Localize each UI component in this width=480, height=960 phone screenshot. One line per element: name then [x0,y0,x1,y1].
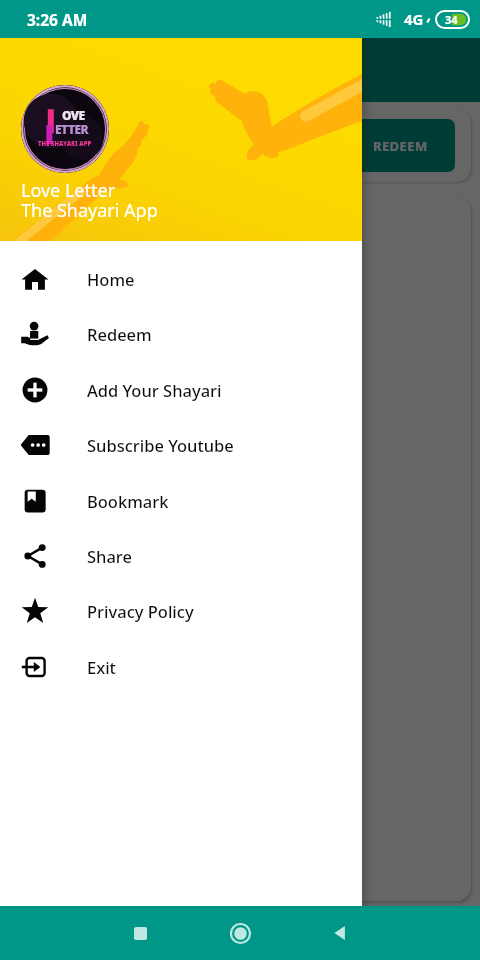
button[interactable]: Bookmark [0,473,362,528]
staticText: Exit [87,656,116,678]
staticText: THE SHAYARI APP [38,140,92,148]
staticText: Redeem [87,323,152,345]
staticText: Privacy Policy [87,600,194,622]
button[interactable]: Share [0,528,362,583]
button[interactable]: Privacy Policy [0,583,362,638]
staticText: Share [87,545,132,567]
staticText: 3:26 AM [27,9,88,30]
button[interactable]: Recent apps [90,906,190,960]
staticText: 34 [445,12,458,27]
button[interactable]: Exit [0,639,362,694]
staticText: Bookmark [87,490,169,512]
staticText: ETTER [55,121,89,137]
button[interactable]: REDEEM [345,119,455,172]
staticText: Home [87,268,135,290]
staticText: Add Your Shayari [87,379,222,401]
button[interactable]: Subscribe Youtube [0,417,362,472]
staticText: REDEEM [373,137,428,155]
button[interactable]: Home [190,906,290,960]
button[interactable]: Back [290,906,390,960]
staticText: OVE [62,107,85,123]
button[interactable]: Home [0,251,362,306]
staticText: 4G [404,9,424,29]
staticText: The Shayari App [21,198,158,223]
button[interactable]: Add Your Shayari [0,362,362,417]
staticText: Subscribe Youtube [87,434,234,456]
button[interactable]: Redeem [0,306,362,361]
staticText: Love Letter [21,178,116,203]
